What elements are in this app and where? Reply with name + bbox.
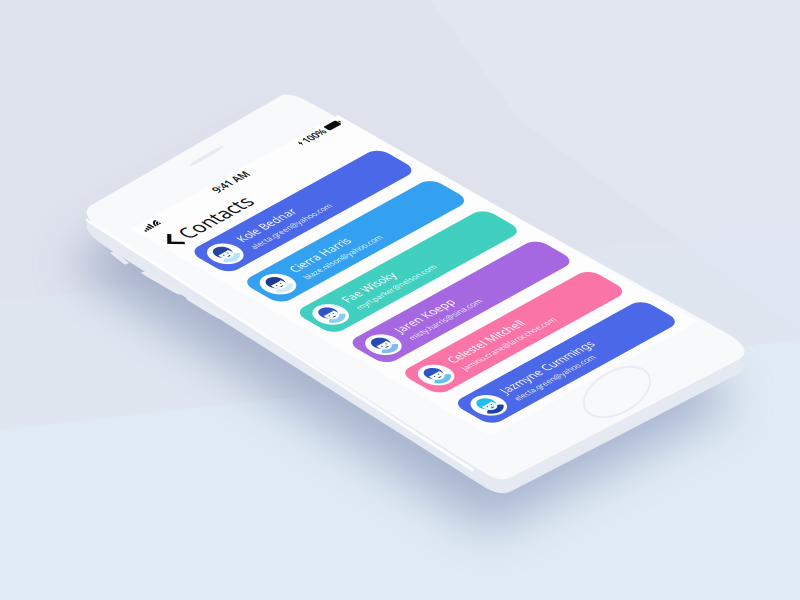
staticText: myrl.parker@nelson.com <box>81 284 221 300</box>
button[interactable]: Kole Bednar <box>16 78 359 142</box>
button[interactable]: Celestel Mitchell <box>16 418 359 482</box>
button[interactable]: Jaren Koepp <box>16 333 359 397</box>
staticText: Jaren Koepp <box>81 344 182 367</box>
button[interactable]: Cierra Harris <box>16 163 359 227</box>
button[interactable]: Fae Wisoky <box>16 248 359 312</box>
staticText: Fae Wisoky <box>81 259 171 282</box>
staticText: Cierra Harris <box>81 174 184 197</box>
staticText: blaze.nilson@yahoo.com <box>81 199 219 215</box>
